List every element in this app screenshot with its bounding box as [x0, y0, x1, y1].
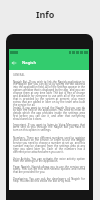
button[interactable]: Back [10, 59, 18, 67]
staticText: Info [36, 8, 55, 20]
staticText: Numbers. There are different numbers use… [13, 136, 85, 154]
staticText: Page: Nagish. Nagish allows you to use t… [13, 165, 85, 174]
staticText: Voice Activity. You can activate the voi… [13, 157, 85, 163]
staticText: Developing. You can ask the developers o… [13, 177, 85, 183]
staticText: Nagish Bot. If you wish to link the Nagi… [13, 80, 85, 107]
staticText: Nagish [22, 60, 37, 66]
staticText: Important. If you want to listen to Voic… [13, 123, 85, 132]
staticText: GENERAL [13, 73, 25, 77]
staticText: Install. If you want to install the Nagi… [13, 106, 85, 121]
